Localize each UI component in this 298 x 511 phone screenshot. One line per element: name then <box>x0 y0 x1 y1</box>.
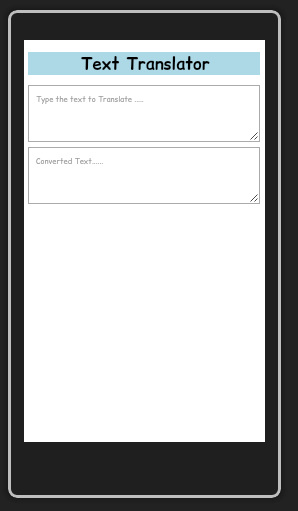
staticText: Converted Text...... <box>36 156 104 167</box>
staticText: Text Translator <box>81 53 210 76</box>
button[interactable]: Converted Text...... <box>28 147 260 204</box>
staticText: Type the text to Translate ..... <box>36 94 144 105</box>
button[interactable]: Text Translator <box>28 52 260 75</box>
button[interactable]: Type the text to Translate ..... <box>28 85 260 142</box>
